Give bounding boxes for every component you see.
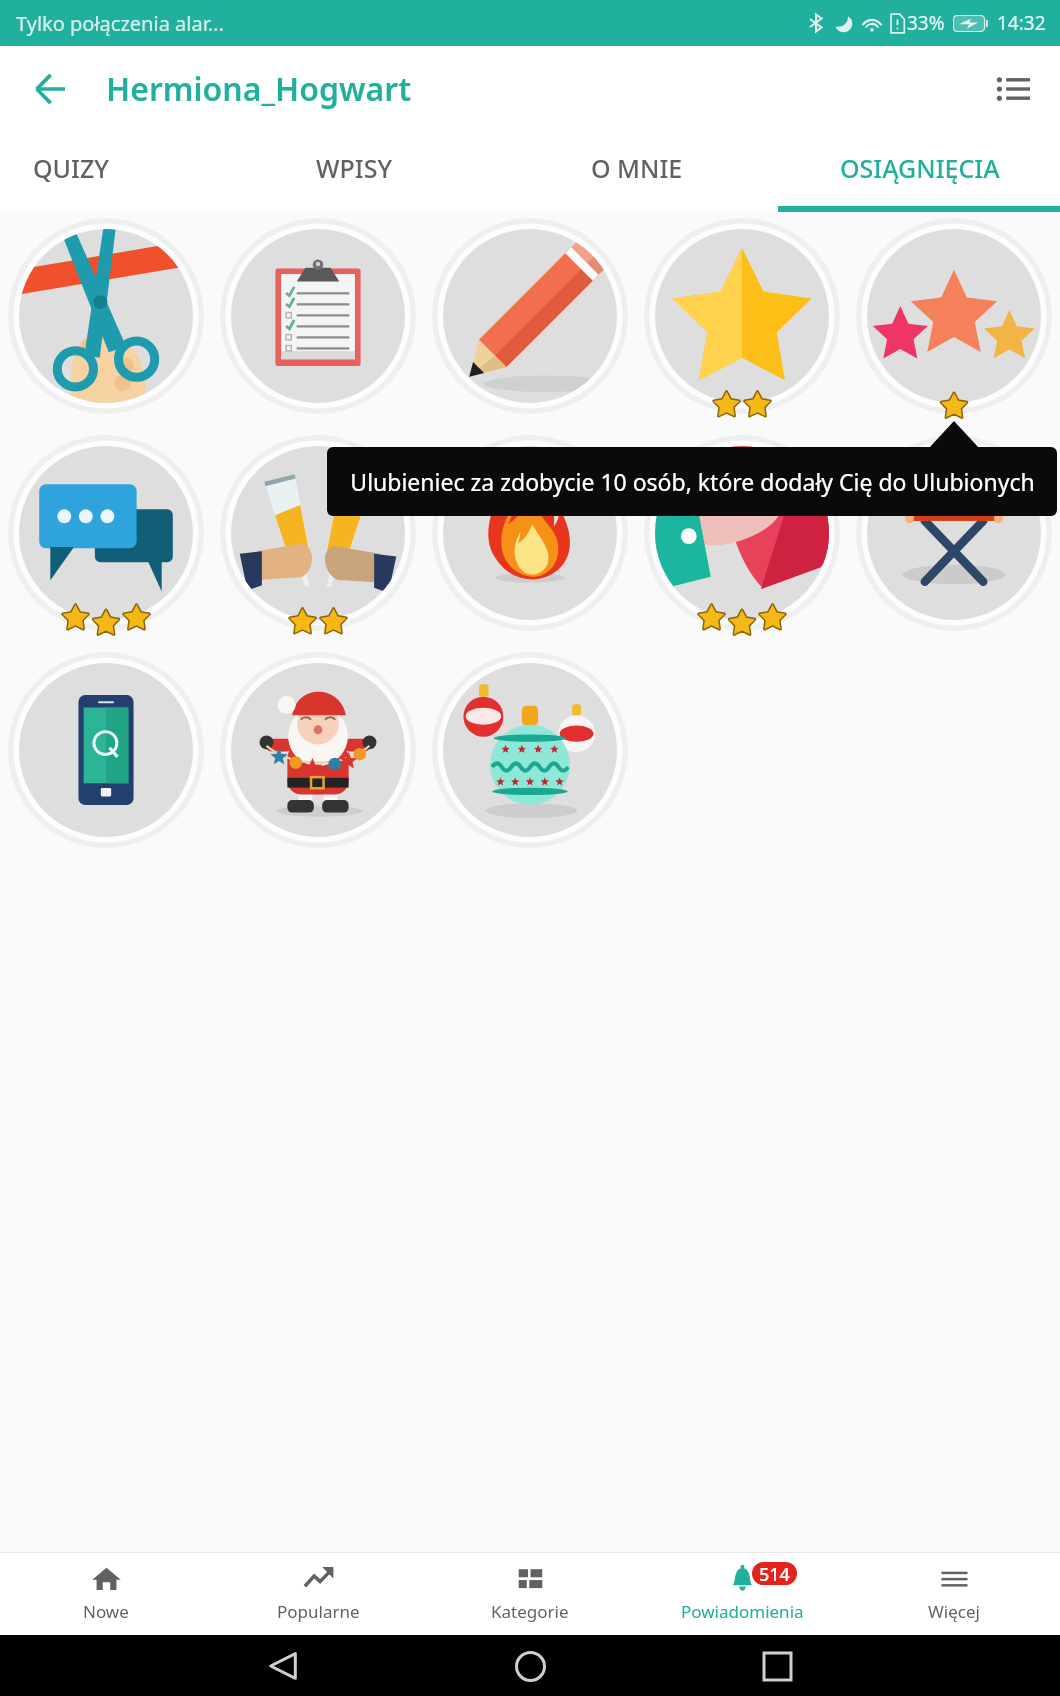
staticText: OSIĄGNIĘCIA	[840, 151, 1000, 185]
staticText: QUIZY	[33, 151, 109, 185]
button[interactable]: Home	[500, 1636, 560, 1696]
button[interactable]: Mikołaj	[208, 640, 428, 860]
staticText: WPISY	[316, 151, 392, 185]
button[interactable]: Serce	[632, 423, 852, 643]
button[interactable]: O MNIE	[495, 132, 778, 212]
button[interactable]: QUIZY	[0, 132, 212, 212]
staticText: Popularne	[277, 1600, 360, 1623]
button[interactable]: Ulubieniec	[844, 206, 1060, 426]
button[interactable]: Ulubieniec za zdobycie 10 osób, które do…	[327, 447, 1057, 516]
button[interactable]: Ogień	[420, 423, 640, 643]
staticText: 33%	[907, 10, 945, 36]
staticText: Ulubieniec za zdobycie 10 osób, które do…	[350, 466, 1035, 497]
button[interactable]: Toast	[208, 423, 428, 643]
button[interactable]: Popularne	[212, 1552, 424, 1635]
button[interactable]: 514	[636, 1552, 848, 1635]
button[interactable]: Gwiazda	[632, 206, 852, 426]
button[interactable]: Autor	[420, 206, 640, 426]
staticText: Tylko połączenia alar...	[16, 10, 224, 37]
staticText: O MNIE	[591, 151, 683, 185]
button[interactable]: Kategorie	[424, 1552, 636, 1635]
button[interactable]: Pierwszy quiz	[0, 206, 216, 426]
button[interactable]: List view	[982, 58, 1044, 120]
staticText: 514	[759, 1562, 790, 1585]
button[interactable]: Więcej	[848, 1552, 1060, 1635]
button[interactable]: Lista	[208, 206, 428, 426]
staticText: Kategorie	[491, 1600, 569, 1623]
staticText: Więcej	[928, 1600, 980, 1623]
staticText: 14:32	[997, 10, 1046, 36]
button[interactable]: WPISY	[212, 132, 495, 212]
button[interactable]: Bombki	[420, 640, 640, 860]
button[interactable]: Back	[253, 1636, 313, 1696]
button[interactable]: Nowe	[0, 1552, 212, 1635]
button[interactable]: Recents	[747, 1636, 807, 1696]
button[interactable]: Back	[14, 53, 86, 125]
button[interactable]: OSIĄGNIĘCIA	[778, 132, 1060, 212]
button[interactable]: Reżyser	[844, 423, 1060, 643]
button[interactable]: Quizy mobile	[0, 640, 216, 860]
staticText: Hermiona_Hogwart	[106, 67, 412, 111]
staticText: Nowe	[83, 1600, 129, 1623]
button[interactable]: Komentator	[0, 423, 216, 643]
staticText: Powiadomienia	[681, 1600, 804, 1623]
